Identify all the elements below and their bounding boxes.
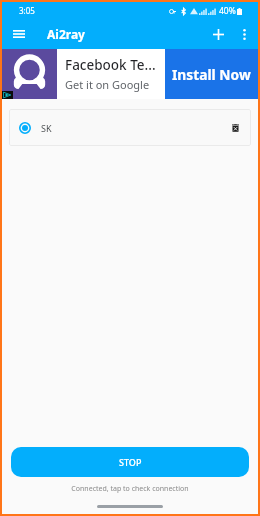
button[interactable]: Connected, tap to check connection: [2, 484, 258, 494]
staticText: Install Now: [172, 65, 251, 84]
staticText: 40%: [219, 5, 236, 17]
button[interactable]: SK: [9, 109, 251, 146]
button[interactable]: Ad choices: [2, 49, 258, 99]
button[interactable]: Ad choices: [2, 91, 13, 99]
staticText: STOP: [119, 456, 142, 468]
staticText: 3:05: [19, 5, 35, 16]
button[interactable]: Install Now: [165, 49, 258, 99]
button[interactable]: Delete: [228, 120, 243, 135]
button[interactable]: Open navigation drawer: [7, 22, 31, 46]
button[interactable]: Add configuration: [205, 21, 231, 47]
button[interactable]: STOP: [11, 447, 249, 477]
button[interactable]: More options: [232, 22, 256, 46]
staticText: Get it on Google: [65, 77, 150, 92]
staticText: SK: [41, 122, 52, 134]
staticText: Ai2ray: [47, 26, 85, 42]
staticText: Facebook Te...: [65, 56, 156, 74]
